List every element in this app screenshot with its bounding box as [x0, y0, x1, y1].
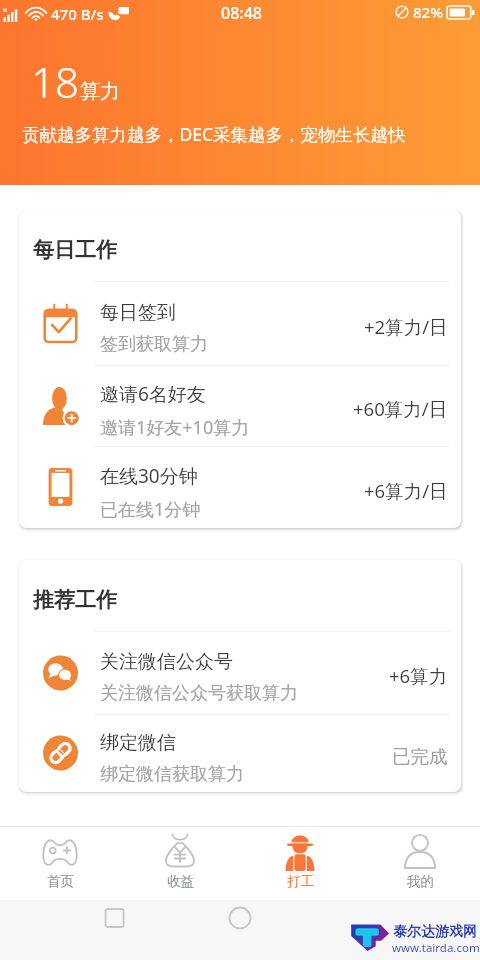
staticText: 18	[31, 53, 79, 110]
staticText: 绑定微信	[100, 731, 176, 755]
button[interactable]: 在线30分钟	[19, 446, 461, 528]
button[interactable]: 绑定微信	[19, 714, 461, 792]
staticText: 签到获取算力	[100, 333, 208, 356]
staticText: 推荐工作	[33, 587, 117, 613]
staticText: 首页	[47, 873, 74, 890]
staticText: 每日工作	[33, 237, 117, 263]
staticText: 已完成	[392, 745, 448, 768]
staticText: 我的	[407, 873, 434, 890]
button[interactable]: 每日签到	[19, 281, 461, 365]
staticText: 贡献越多算力越多，DEC采集越多，宠物生长越快	[22, 122, 406, 146]
staticText: 470 B/s	[51, 4, 104, 24]
staticText: 关注微信公众号获取算力	[100, 682, 298, 705]
button[interactable]: 关注微信公众号	[19, 631, 461, 714]
staticText: +6算力	[389, 663, 448, 688]
button[interactable]: 邀请6名好友	[19, 365, 461, 446]
button[interactable]: 收益	[120, 827, 240, 900]
staticText: +60算力/日	[353, 396, 448, 421]
staticText: 打工	[287, 873, 314, 890]
staticText: www.tairda.com	[392, 940, 480, 956]
button[interactable]: 打工	[240, 827, 360, 900]
staticText: 在线30分钟	[100, 463, 198, 489]
staticText: 邀请1好友+10算力	[100, 415, 250, 440]
staticText: 82%	[413, 2, 443, 22]
staticText: 绑定微信获取算力	[100, 763, 244, 786]
button[interactable]: 我的	[360, 827, 480, 900]
staticText: 08:48	[221, 2, 262, 24]
staticText: 每日签到	[100, 301, 176, 325]
staticText: 泰尔达游戏网	[393, 923, 477, 941]
button[interactable]: 首页	[0, 827, 120, 900]
staticText: 已在线1分钟	[100, 497, 201, 522]
staticText: +6算力/日	[364, 478, 448, 503]
staticText: 收益	[167, 873, 194, 890]
staticText: 邀请6名好友	[100, 381, 206, 407]
staticText: 算力	[80, 79, 120, 104]
staticText: +2算力/日	[364, 314, 448, 339]
staticText: 关注微信公众号	[100, 650, 233, 674]
